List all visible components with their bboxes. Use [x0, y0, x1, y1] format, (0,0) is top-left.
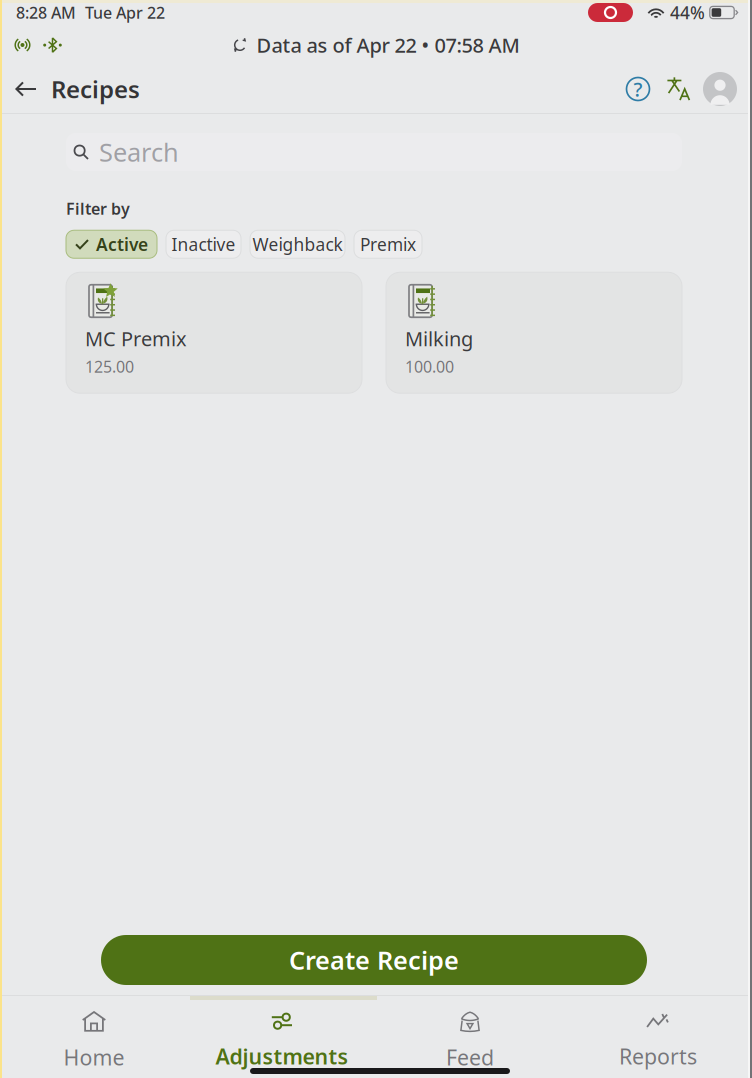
staticText: Inactive	[171, 233, 235, 256]
staticText: Home	[63, 1043, 124, 1071]
button[interactable]: Help	[618, 69, 658, 109]
button[interactable]: Adjustments	[188, 996, 376, 1078]
button[interactable]: Translate	[658, 69, 700, 109]
button[interactable]: Feed	[376, 996, 564, 1078]
button[interactable]: Back	[4, 67, 48, 111]
staticText: Filter by	[66, 198, 130, 219]
button[interactable]: Inactive	[166, 230, 241, 258]
button[interactable]: Search	[66, 133, 682, 171]
button[interactable]: MC Premix	[66, 272, 362, 393]
button[interactable]: Milking	[386, 272, 682, 393]
staticText: 8:28 AM	[16, 2, 76, 23]
staticText: Adjustments	[215, 1042, 348, 1070]
staticText: Create Recipe	[289, 943, 459, 977]
button[interactable]: Active	[66, 230, 157, 258]
staticText: Tue Apr 22	[85, 2, 165, 23]
staticText: Recipes	[51, 73, 140, 105]
button[interactable]: Profile	[700, 69, 740, 109]
button[interactable]: Create Recipe	[101, 935, 647, 985]
staticText: Feed	[446, 1043, 494, 1071]
staticText: Data as of Apr 22 • 07:58 AM	[256, 32, 519, 58]
staticText: Milking	[405, 325, 473, 352]
button[interactable]: Reports	[564, 996, 752, 1078]
staticText: Active	[96, 233, 148, 256]
staticText: MC Premix	[85, 325, 187, 352]
staticText: Search	[99, 135, 179, 169]
button[interactable]: Weighback	[250, 230, 345, 258]
staticText: ?	[633, 76, 642, 102]
button[interactable]: Home	[0, 996, 188, 1078]
staticText: Weighback	[252, 233, 342, 256]
button[interactable]: Premix	[354, 230, 422, 258]
staticText: 125.00	[85, 356, 134, 377]
staticText: 44%	[670, 1, 705, 24]
staticText: 100.00	[405, 356, 454, 377]
staticText: Reports	[619, 1042, 697, 1070]
staticText: Premix	[360, 233, 416, 256]
